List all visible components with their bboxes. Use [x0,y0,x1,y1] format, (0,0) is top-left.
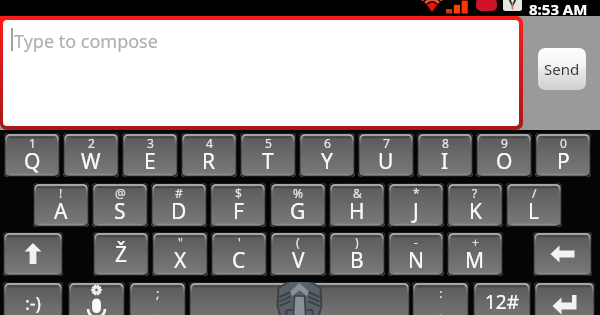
staticText: ' [238,234,241,250]
staticText: : [439,284,443,302]
button[interactable]: 0 [535,133,591,177]
staticText: K [469,197,482,226]
button[interactable]: * [388,183,444,227]
staticText: O [496,147,513,176]
staticText: :-) [25,291,42,315]
staticText: Q [24,147,41,176]
staticText: 3 [147,135,154,151]
staticText: , [155,299,160,315]
staticText: 8 [442,135,449,151]
staticText: 12# [485,289,520,315]
button[interactable]: Send [538,48,586,90]
button[interactable]: ' [211,232,267,276]
staticText: C [232,246,246,275]
staticText: 1 [29,135,36,151]
staticText: $ [235,185,242,201]
staticText: 6 [324,135,331,151]
button[interactable]: 3 [122,133,178,177]
button[interactable]: Space [189,282,410,315]
button[interactable]: Type to compose [0,16,523,130]
button[interactable]: ; [129,282,186,315]
staticText: E [144,147,156,176]
button[interactable]: 2 [63,133,119,177]
button[interactable]: Ž [93,232,149,276]
button[interactable]: ) [329,232,385,276]
button[interactable]: : [412,282,469,315]
staticText: / [532,185,537,201]
button[interactable]: 9 [476,133,532,177]
staticText: M [465,246,485,275]
staticText: 0 [560,135,567,151]
staticText: 5 [265,135,272,151]
staticText: & [353,185,362,201]
button[interactable]: 8 [417,133,473,177]
button[interactable]: - [388,232,444,276]
button[interactable]: :-) [3,282,63,315]
staticText: N [408,246,424,275]
staticText: G [290,197,306,226]
staticText: J [413,197,419,226]
button[interactable]: / [506,183,562,227]
button[interactable]: Shift [3,232,63,276]
staticText: D [171,197,187,226]
staticText: ) [355,234,359,250]
staticText: H [349,197,365,226]
staticText: 9 [501,135,508,151]
staticText: A [54,197,68,226]
staticText: * [413,185,420,201]
staticText: F [233,197,244,226]
button[interactable]: Voice input [68,282,125,315]
staticText: V [292,246,305,275]
staticText: - [414,234,418,250]
staticText: I [441,147,449,176]
button[interactable]: 12# [473,282,531,315]
staticText: X [174,246,187,275]
staticText: 8:53 AM [529,0,588,15]
staticText: " [178,234,183,250]
staticText: L [528,197,540,226]
button[interactable]: % [270,183,326,227]
staticText: + [472,234,479,250]
staticText: 2 [88,135,95,151]
staticText: Y [321,147,333,176]
staticText: Send [544,59,580,79]
staticText: U [378,147,394,176]
button[interactable]: @ [92,183,148,227]
button[interactable]: ! [33,183,89,227]
staticText: S [114,197,126,226]
staticText: Type to compose [14,29,158,54]
staticText: T [262,147,274,176]
button[interactable]: 1 [4,133,60,177]
button[interactable]: 6 [299,133,355,177]
staticText: W [81,147,101,176]
button[interactable]: Backspace [533,232,592,276]
staticText: % [293,185,303,201]
button[interactable]: ( [270,232,326,276]
button[interactable]: + [447,232,503,276]
button[interactable]: & [329,183,385,227]
staticText: R [202,147,216,176]
button[interactable]: # [151,183,207,227]
staticText: ; [156,284,160,302]
staticText: P [557,147,570,176]
button[interactable]: " [152,232,208,276]
staticText: @ [115,185,126,201]
button[interactable]: ? [447,183,503,227]
staticText: . [438,299,443,315]
button[interactable]: Enter [534,282,595,315]
staticText: # [175,185,183,201]
button[interactable]: 4 [181,133,237,177]
staticText: 7 [383,135,390,151]
staticText: ? [472,185,478,201]
button[interactable]: 5 [240,133,296,177]
staticText: ( [296,234,300,250]
staticText: Ž [115,240,128,269]
staticText: B [350,246,364,275]
button[interactable]: 7 [358,133,414,177]
button[interactable]: $ [210,183,266,227]
staticText: 4 [206,135,213,151]
staticText: ! [59,185,63,201]
